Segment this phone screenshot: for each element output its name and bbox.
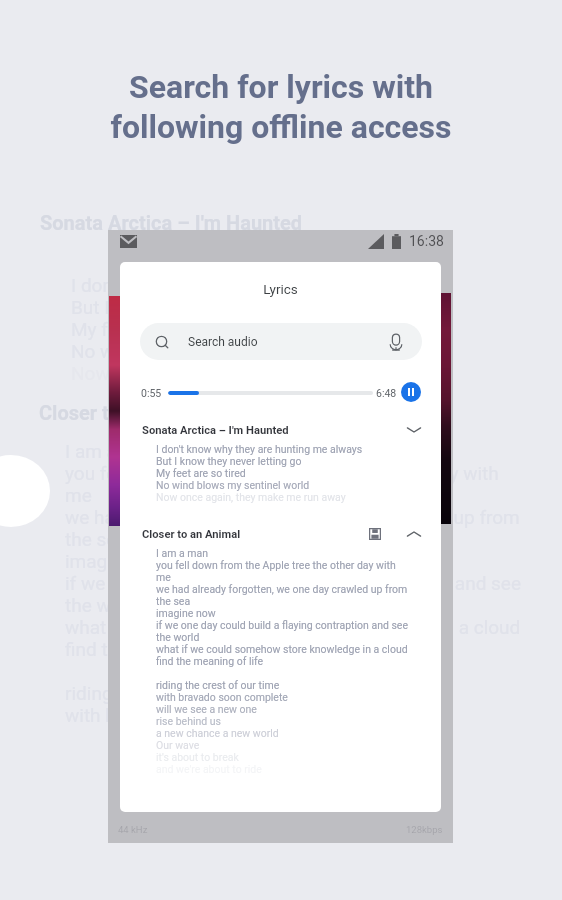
button[interactable]: Sonata Arctica – I'm Haunted [120, 415, 441, 445]
staticText: My feet are so tired [156, 467, 246, 479]
staticText: No wind blows my sentinel world [71, 340, 349, 362]
staticText: I don't know why they are hunting me alw… [71, 274, 445, 296]
staticText: Sonata Arctica – I'm Haunted [142, 424, 289, 437]
staticText: and we're about to ride [156, 763, 262, 775]
staticText: 44 kHz [118, 824, 148, 835]
staticText: 128kbps [406, 824, 443, 835]
button[interactable]: Collapse Closer to an Animal [401, 521, 427, 547]
staticText: imagine now [65, 550, 173, 572]
staticText: you fell down from the Apple tree the ot… [65, 462, 499, 484]
staticText: what if we could somehow store knowledge… [156, 643, 408, 655]
staticText: the sea [156, 595, 191, 607]
button[interactable]: Closer to an Animal [120, 519, 441, 549]
staticText: Lyrics [120, 281, 441, 297]
button[interactable]: Save lyrics [365, 524, 385, 544]
staticText: Sonata Arctica – I'm Haunted [40, 211, 303, 234]
staticText: we had already forgotten, we one day cra… [156, 583, 408, 595]
staticText: I am a man [156, 547, 209, 559]
staticText: 6:48 [376, 387, 397, 399]
staticText: 0:55 [141, 387, 162, 399]
staticText: Now once again, they make me run away [71, 362, 415, 384]
button[interactable]: Search audio [140, 323, 422, 360]
staticText: the world [65, 594, 144, 616]
staticText: me [156, 571, 171, 583]
staticText: with bravado soon complete [156, 691, 288, 703]
staticText: me [65, 484, 92, 506]
button[interactable]: Collapse Sonata Arctica [401, 417, 427, 443]
staticText: if we one day could build a flaying cont… [156, 619, 409, 631]
staticText: 16:38 [409, 233, 444, 249]
staticText: riding the crest of our time [65, 682, 288, 704]
staticText: Closer to an Animal [142, 528, 241, 541]
staticText: it's about to break [156, 751, 239, 763]
staticText: riding the crest of our time [156, 679, 280, 691]
staticText: imagine now [156, 607, 216, 619]
staticText: Search audio [188, 335, 258, 349]
staticText: find the meaning of life [65, 638, 259, 660]
button[interactable]: Pause [401, 382, 421, 402]
staticText: we had already forgotten, we one day cra… [65, 506, 520, 528]
staticText: will we see a new one [156, 703, 257, 715]
staticText: But I know they never letting go [71, 296, 335, 318]
staticText: you fell down from the Apple tree the ot… [156, 559, 396, 571]
staticText: rise behind us [156, 715, 222, 727]
staticText: No wind blows my sentinel world [156, 479, 310, 491]
staticText: Now once again, they make me run away [156, 491, 346, 503]
staticText: if we one day could build a flaying cont… [65, 572, 522, 594]
staticText: My feet are so tired [71, 318, 234, 340]
staticText: I don't know why they are hunting me alw… [156, 443, 363, 455]
staticText: the sea [65, 528, 127, 550]
staticText: Search for lyrics with following offline… [0, 68, 562, 146]
staticText: what if we could somehow store knowledge… [65, 616, 521, 638]
staticText: the world [156, 631, 200, 643]
staticText: a new chance a new world [156, 727, 279, 739]
staticText: But I know they never letting go [156, 455, 302, 467]
staticText: with bravado soon complete [65, 704, 304, 726]
staticText: Closer to an Animal [39, 401, 215, 424]
staticText: Our wave [156, 739, 200, 751]
staticText: I am a man [65, 440, 160, 462]
staticText: find the meaning of life [156, 655, 264, 667]
